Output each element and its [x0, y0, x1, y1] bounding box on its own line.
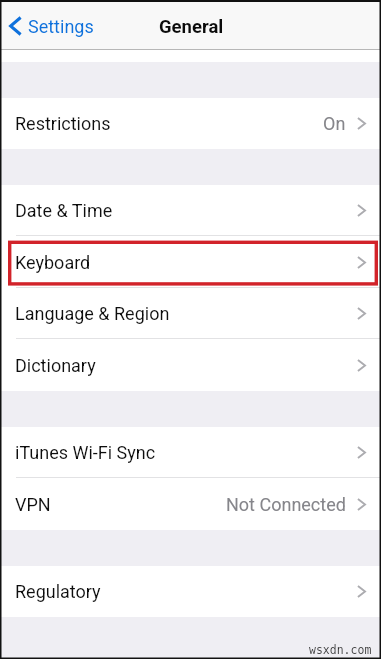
staticText: General	[159, 16, 224, 38]
button[interactable]: Back to Settings	[9, 16, 94, 37]
staticText: wsxdn.com	[309, 643, 372, 656]
staticText: Dictionary	[15, 355, 96, 376]
staticText: Settings	[28, 16, 94, 37]
button[interactable]: Date & Time	[0, 185, 381, 236]
staticText: Restrictions	[15, 113, 111, 134]
button[interactable]: Restrictions	[0, 98, 381, 149]
button[interactable]: Keyboard	[0, 236, 381, 288]
staticText: Date & Time	[15, 200, 113, 221]
button[interactable]: Language & Region	[0, 288, 381, 339]
staticText: VPN	[15, 494, 51, 515]
other: Back to Settings	[9, 16, 22, 36]
button[interactable]: VPN	[0, 478, 381, 530]
staticText: Language & Region	[15, 303, 170, 324]
button[interactable]: Dictionary	[0, 339, 381, 391]
staticText: On	[323, 113, 346, 134]
staticText: Regulatory	[15, 581, 101, 602]
staticText: Not Connected	[226, 494, 346, 515]
button[interactable]: iTunes Wi-Fi Sync	[0, 427, 381, 478]
button[interactable]: Regulatory	[0, 566, 381, 617]
staticText: Keyboard	[15, 252, 91, 273]
staticText: iTunes Wi-Fi Sync	[15, 442, 156, 463]
